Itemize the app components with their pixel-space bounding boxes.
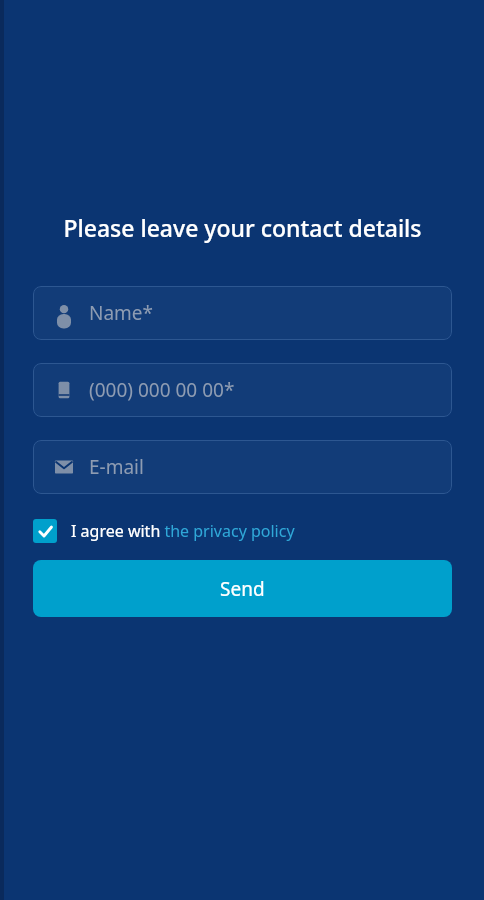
staticText: Name* [89,300,154,326]
staticText: E-mail [89,454,144,480]
button[interactable]: Name* [33,286,452,340]
staticText: Please leave your contact details [33,212,452,243]
other: I agree with the privacy policy [33,519,57,543]
staticText: (000) 000 00 00* [89,377,235,403]
button[interactable]: I agree with the privacy policy [33,517,295,545]
button[interactable]: Send [33,560,452,617]
button[interactable]: E-mail [33,440,452,494]
button[interactable]: (000) 000 00 00* [33,363,452,417]
staticText: Send [220,576,265,602]
staticText: I agree with the privacy policy [71,520,295,542]
